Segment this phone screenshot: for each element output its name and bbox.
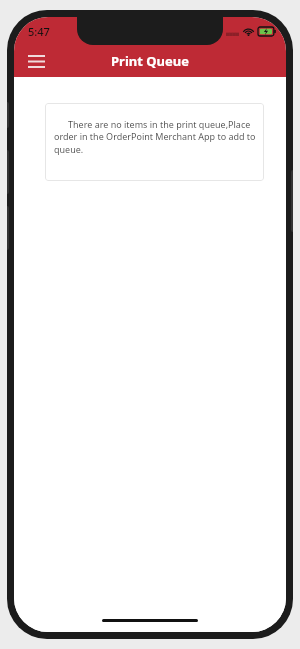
staticText: 5:47 xyxy=(28,24,50,39)
button[interactable]: Open navigation menu xyxy=(21,46,51,76)
staticText: Print Queue xyxy=(111,52,189,70)
staticText: There are no items in the print queue,Pl… xyxy=(54,118,256,156)
button[interactable]: There are no items in the print queue,Pl… xyxy=(45,103,264,181)
